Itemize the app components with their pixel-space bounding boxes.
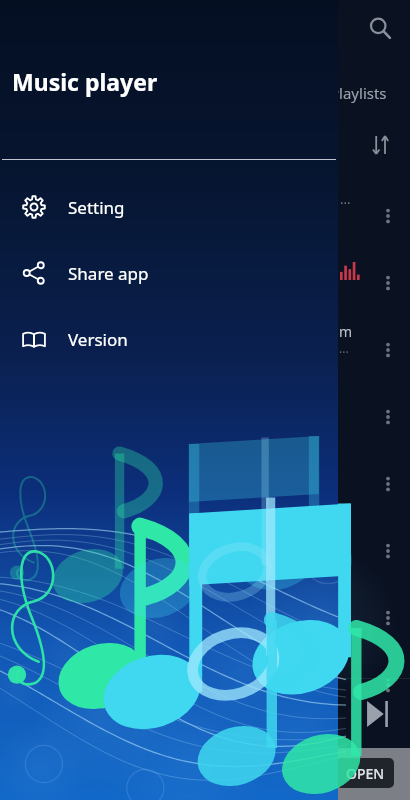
button[interactable]: Version: [0, 314, 338, 364]
staticText: m: [339, 322, 353, 341]
button[interactable]: More options: [346, 186, 410, 246]
staticText: Version: [68, 328, 128, 351]
button[interactable]: Sort: [362, 126, 400, 164]
button[interactable]: More options: [346, 655, 410, 715]
staticText: OPEN: [346, 764, 385, 783]
button[interactable]: More options: [346, 454, 410, 514]
button[interactable]: More options: [372, 602, 404, 634]
staticText: Playlists: [330, 83, 387, 103]
button[interactable]: More options: [372, 468, 404, 500]
button[interactable]: More options: [346, 320, 410, 380]
button[interactable]: More options: [346, 588, 410, 648]
button[interactable]: Next track: [352, 688, 404, 740]
staticText: Music player: [12, 66, 158, 97]
button[interactable]: Share app: [0, 248, 338, 298]
button[interactable]: More options: [346, 253, 410, 313]
button[interactable]: Search: [360, 8, 400, 48]
button[interactable]: More options: [372, 267, 404, 299]
staticText: Setting: [68, 196, 125, 219]
button[interactable]: More options: [346, 387, 410, 447]
button[interactable]: More options: [372, 334, 404, 366]
button[interactable]: More options: [372, 200, 404, 232]
button[interactable]: More options: [372, 669, 404, 701]
staticText: ...: [339, 340, 349, 356]
button[interactable]: More options: [372, 401, 404, 433]
button[interactable]: OPEN: [336, 758, 394, 788]
button[interactable]: Playlists: [330, 76, 410, 110]
button[interactable]: More options: [346, 521, 410, 581]
staticText: Share app: [68, 262, 149, 285]
button[interactable]: Setting: [0, 182, 338, 232]
staticText: ...: [340, 190, 351, 208]
button[interactable]: More options: [372, 535, 404, 567]
